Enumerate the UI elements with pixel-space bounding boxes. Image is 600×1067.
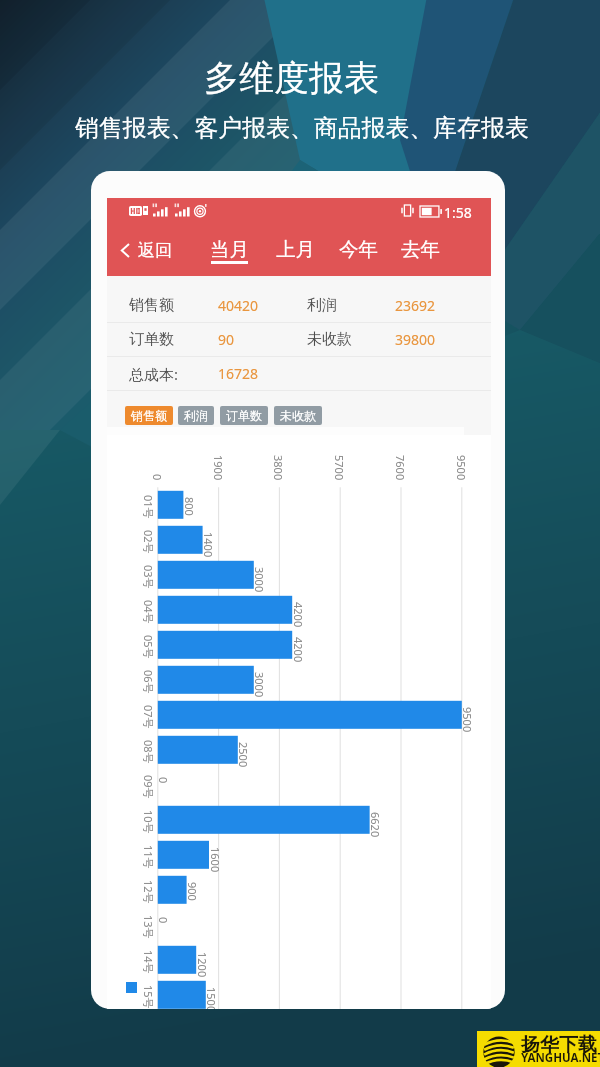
button[interactable]: 当月 [204, 225, 254, 276]
staticText: 90 [218, 330, 235, 349]
staticText: 1200 [195, 952, 210, 978]
staticText: 05号 [141, 635, 156, 659]
staticText: 销售报表、客户报表、商品报表、库存报表 [75, 113, 529, 143]
button[interactable]: 返回 [115, 224, 178, 276]
staticText: 800 [182, 497, 197, 516]
staticText: 订单数 [129, 330, 174, 349]
button[interactable]: 今年 [333, 225, 383, 276]
staticText: 9500 [460, 707, 475, 733]
staticText: 01号 [141, 495, 156, 519]
staticText: 3000 [252, 672, 267, 698]
staticText: 3000 [252, 567, 267, 593]
staticText: 1500 [204, 987, 219, 1009]
staticText: 11号 [141, 845, 156, 869]
staticText: 12号 [141, 880, 156, 904]
staticText: 1:58 [444, 203, 472, 222]
staticText: 02号 [141, 530, 156, 554]
staticText: 08号 [141, 740, 156, 764]
staticText: 0 [156, 917, 171, 924]
staticText: 销售额 [131, 408, 167, 423]
staticText: 1600 [208, 847, 223, 873]
staticText: 09号 [141, 775, 156, 799]
staticText: 未收款 [280, 408, 316, 423]
staticText: 7600 [393, 455, 408, 481]
staticText: 1400 [201, 532, 216, 558]
staticText: 订单数 [226, 408, 262, 423]
button[interactable]: 利润 [178, 406, 214, 425]
staticText: 去年 [401, 237, 440, 262]
staticText: 0 [150, 474, 165, 481]
staticText: 3800 [271, 455, 286, 481]
button[interactable]: 订单数 [220, 406, 268, 425]
staticText: 利润 [184, 408, 208, 423]
staticText: 5700 [332, 455, 347, 481]
staticText: 07号 [141, 705, 156, 729]
staticText: YANGHUA.NET [521, 1050, 600, 1066]
staticText: 04号 [141, 600, 156, 624]
staticText: 当月 [210, 237, 249, 262]
staticText: 今年 [339, 237, 378, 262]
staticText: 未收款 [307, 330, 352, 349]
staticText: 06号 [141, 670, 156, 694]
staticText: 03号 [141, 565, 156, 589]
staticText: 4200 [291, 602, 306, 628]
button[interactable]: 去年 [395, 225, 445, 276]
staticText: 15号 [141, 985, 156, 1009]
staticText: 2500 [236, 742, 251, 768]
staticText: 23692 [395, 296, 436, 315]
staticText: 利润 [307, 296, 337, 315]
staticText: 14号 [141, 950, 156, 974]
staticText: 4200 [291, 637, 306, 663]
staticText: 10号 [141, 810, 156, 834]
staticText: 总成本: [129, 364, 179, 384]
staticText: 0 [156, 777, 171, 784]
staticText: 40420 [218, 296, 259, 315]
staticText: 39800 [395, 330, 436, 349]
staticText: 16728 [218, 364, 259, 383]
staticText: 销售额 [129, 296, 174, 315]
button[interactable]: 上月 [270, 225, 320, 276]
button[interactable]: 销售额 [125, 406, 173, 425]
staticText: 6620 [368, 812, 383, 838]
staticText: 上月 [276, 237, 315, 262]
staticText: 返回 [138, 240, 172, 261]
staticText: 900 [185, 882, 200, 901]
staticText: 13号 [141, 915, 156, 939]
staticText: 9500 [454, 455, 469, 481]
staticText: 多维度报表 [204, 56, 379, 100]
button[interactable]: 未收款 [274, 406, 322, 425]
staticText: 1900 [211, 455, 226, 481]
staticText: 扬华下载 [521, 1033, 597, 1057]
